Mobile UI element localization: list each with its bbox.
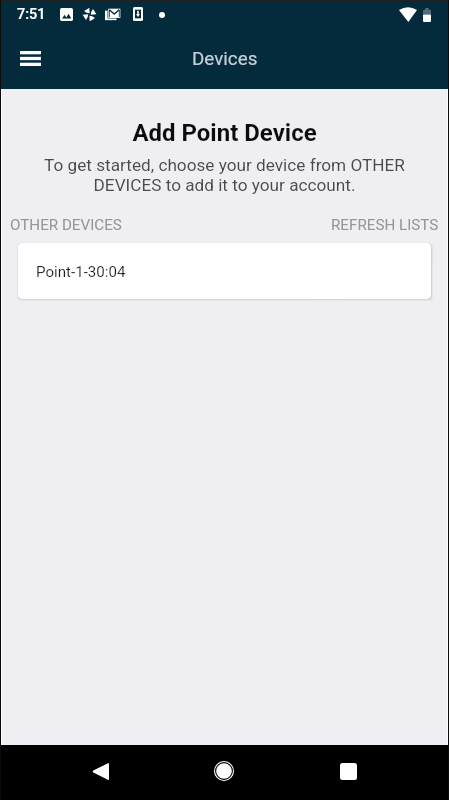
staticText: REFRESH LISTS [331,216,439,234]
staticText: To get started, choose your device from … [40,155,409,195]
staticText: 7:51 [17,6,46,23]
button[interactable]: Open navigation menu [7,36,53,82]
staticText: OTHER DEVICES [10,216,122,234]
staticText: Add Point Device [0,119,449,147]
button[interactable]: REFRESH LISTS [331,216,439,234]
button[interactable]: Recent apps [324,747,372,795]
button[interactable]: Back [76,747,124,795]
button[interactable]: Point-1-30:04 [18,243,431,299]
button[interactable]: Home [200,747,248,795]
staticText: Devices [192,48,258,70]
staticText: Point-1-30:04 [36,263,126,281]
